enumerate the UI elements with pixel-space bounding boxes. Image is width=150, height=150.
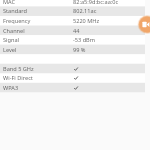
staticText: 5220 MHz [73,17,100,25]
staticText: -53 dBm [73,36,95,44]
button[interactable]: Record video [139,16,150,33]
staticText: Wi-Fi Direct [3,74,33,82]
button[interactable]: Level [0,45,145,55]
staticText: 99 % [73,46,86,54]
staticText: WPA3 [3,84,19,92]
staticText: 44 [73,27,80,35]
button[interactable]: Signal [0,35,145,45]
staticText: MAC [3,0,16,6]
button[interactable]: Band 5 GHz [0,64,145,74]
staticText: 802.11ac [73,7,97,15]
button[interactable]: MAC [0,0,145,7]
button[interactable]: Wi-Fi Direct [0,73,145,83]
button[interactable]: Frequency [0,16,145,26]
staticText: Level [3,46,17,54]
staticText: Frequency [3,17,31,25]
staticText: Band 5 GHz [3,65,34,73]
button[interactable]: WPA3 [0,83,145,93]
button[interactable]: Standard [0,6,145,16]
button[interactable]: Channel [0,26,145,36]
staticText: Standard [3,7,27,15]
staticText: Channel [3,27,25,35]
staticText: Signal [3,36,19,44]
staticText: 82:a5:9d:bc:aa:0c [73,0,119,6]
